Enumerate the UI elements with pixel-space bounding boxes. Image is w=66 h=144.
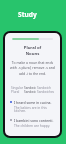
staticText: Plural: [11, 90, 20, 94]
staticText: Study: [18, 10, 37, 19]
staticText: The babies are in this kitchen.: [14, 105, 56, 113]
staticText: Sandwiches: [24, 90, 37, 94]
staticText: Singular: [11, 86, 24, 90]
staticText: Sandwich: [24, 86, 37, 90]
staticText: Plural of Nouns: [5, 45, 60, 56]
button[interactable]: Study: [18, 10, 37, 19]
button[interactable]: I heard some in cucina.: [10, 100, 56, 113]
staticText: Sandwich: [37, 86, 51, 90]
staticText: Sandwiches: [37, 90, 55, 94]
staticText: I heard some in cucina.: [14, 100, 52, 105]
button[interactable]: I bambini sono contenti.: [10, 118, 56, 127]
staticText: I bambini sono contenti.: [14, 118, 54, 123]
staticText: To make a noun that ends with -s plural,…: [10, 60, 55, 76]
staticText: The children are happy.: [14, 123, 51, 127]
